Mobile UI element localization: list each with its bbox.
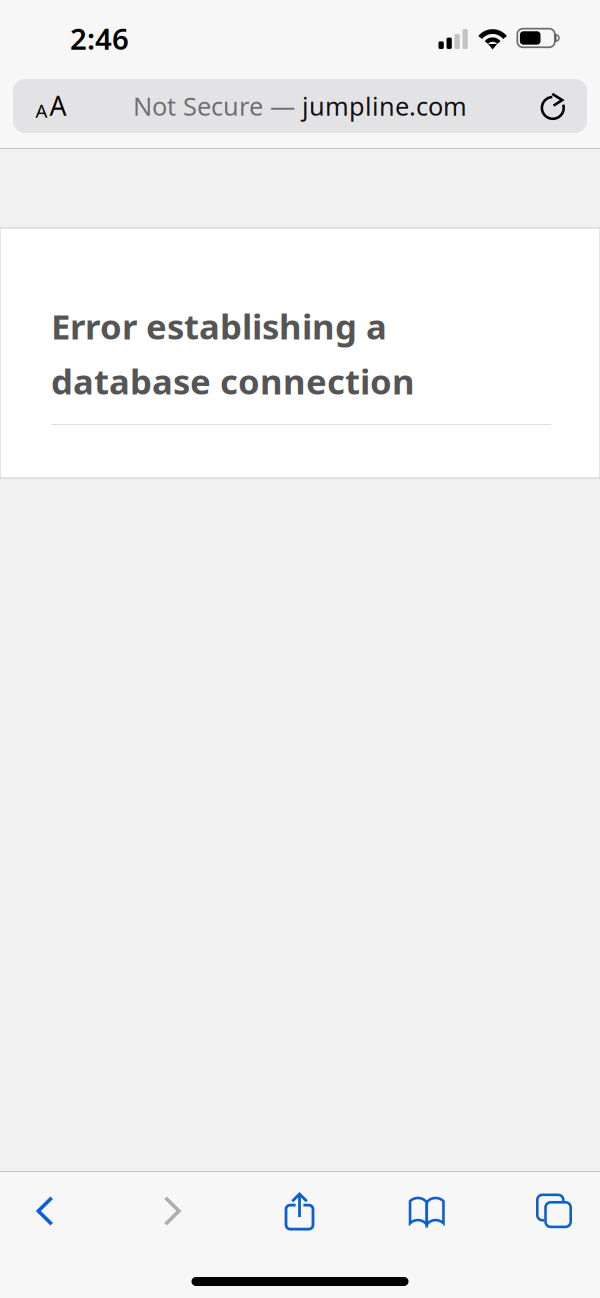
staticText: 2:46 — [70, 19, 129, 58]
staticText: Not Secure — — [133, 89, 302, 123]
staticText: database connection — [51, 358, 415, 404]
button[interactable]: Reload — [521, 79, 587, 133]
button[interactable]: Bookmarks — [399, 1184, 455, 1238]
button[interactable]: Page settings — [13, 79, 79, 133]
button[interactable]: Share — [271, 1184, 327, 1238]
button[interactable]: Tabs — [526, 1184, 582, 1238]
staticText: A — [35, 98, 47, 123]
staticText: A — [49, 88, 66, 123]
button[interactable]: Back — [17, 1184, 73, 1238]
staticText: jumpline.com — [302, 89, 467, 123]
staticText: Error establishing a — [51, 303, 387, 349]
button[interactable]: Forward — [144, 1184, 200, 1238]
